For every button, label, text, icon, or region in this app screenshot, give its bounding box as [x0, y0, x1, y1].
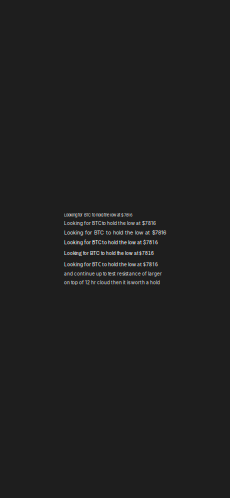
staticText: on top of 12 hr cloud then it is worth a…	[64, 280, 160, 285]
staticText: Looking for BTC to hold the low at $7816	[64, 260, 158, 268]
staticText: Looking for BTC to hold the low at $7816	[64, 239, 158, 246]
staticText: and continue up to test resistance of la…	[64, 271, 162, 277]
staticText: Looking for BTC to hold the low at $7816	[64, 221, 156, 226]
staticText: Looking for BTC to hold the low at $7816	[64, 249, 154, 257]
staticText: Looking for BTC to hold the low at $7816	[64, 229, 166, 236]
staticText: Looking for BTC to hold the low at $7816	[64, 213, 132, 217]
